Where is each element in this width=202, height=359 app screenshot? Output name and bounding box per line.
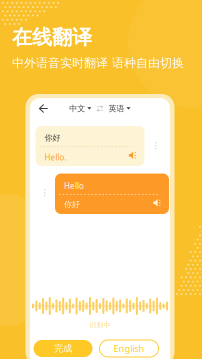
staticText: 识别中 (89, 321, 110, 329)
staticText: 英语 (108, 104, 124, 113)
button[interactable]: 中文 (69, 104, 91, 113)
staticText: 你好 (44, 133, 60, 143)
button[interactable]: Hello (55, 173, 169, 214)
button[interactable]: Back (33, 98, 54, 119)
staticText: English (113, 342, 144, 355)
button[interactable]: 英语 (108, 104, 131, 113)
staticText: Hello. (44, 152, 66, 163)
staticText: 中文 (69, 104, 85, 113)
staticText: 中外语音实时翻译 语种自由切换 (12, 56, 184, 70)
button[interactable]: English (99, 340, 158, 357)
staticText: 在线翻译 (12, 25, 92, 50)
staticText: 你好 (64, 199, 80, 209)
staticText: Hello (64, 180, 84, 191)
button[interactable]: 完成 (33, 340, 92, 357)
button[interactable]: 你好 (35, 126, 144, 166)
staticText: 完成 (54, 343, 72, 354)
